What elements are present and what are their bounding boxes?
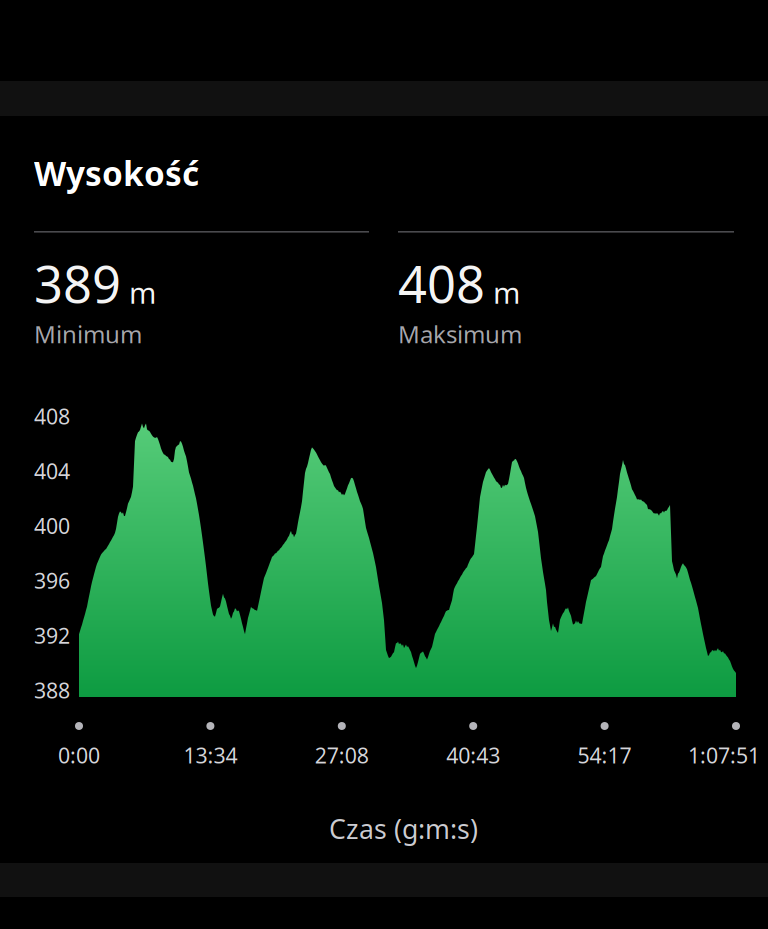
- staticText: Wysokość: [34, 151, 199, 195]
- staticText: Czas (g:m:s): [329, 811, 478, 846]
- staticText: 400: [34, 512, 70, 540]
- button[interactable]: 408: [398, 231, 734, 350]
- staticText: 408: [398, 250, 485, 317]
- staticText: 392: [34, 621, 70, 649]
- staticText: 404: [34, 457, 70, 485]
- staticText: 54:17: [578, 741, 632, 769]
- staticText: 396: [34, 566, 70, 595]
- staticText: Minimum: [34, 318, 142, 350]
- button[interactable]: Wysokość: [0, 116, 768, 863]
- staticText: m: [129, 273, 156, 312]
- staticText: m: [493, 273, 520, 312]
- staticText: 388: [34, 676, 70, 704]
- staticText: 1:07:51: [688, 741, 760, 769]
- staticText: 40:43: [446, 741, 500, 769]
- staticText: 389: [34, 250, 121, 317]
- staticText: 408: [34, 402, 70, 430]
- staticText: 0:00: [58, 741, 100, 769]
- staticText: Maksimum: [398, 318, 522, 350]
- button[interactable]: 389: [34, 231, 369, 350]
- staticText: 13:34: [183, 741, 237, 769]
- staticText: 27:08: [315, 741, 369, 769]
